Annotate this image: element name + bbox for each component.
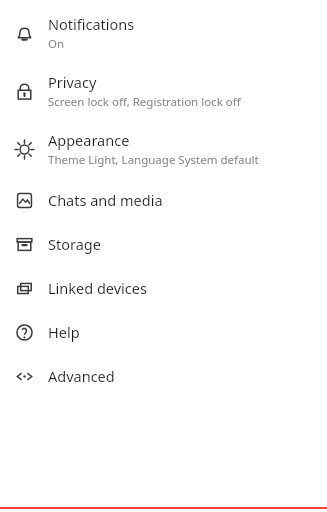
- staticText: Appearance: [48, 130, 130, 150]
- staticText: Theme Light, Language System default: [48, 152, 259, 168]
- button[interactable]: Chats and media: [0, 178, 327, 222]
- staticText: On: [48, 36, 65, 52]
- staticText: Advanced: [48, 366, 115, 386]
- staticText: Help: [48, 322, 80, 342]
- staticText: Chats and media: [48, 190, 163, 210]
- button[interactable]: Notifications: [0, 4, 327, 62]
- staticText: Linked devices: [48, 278, 147, 298]
- staticText: Storage: [48, 234, 101, 254]
- button[interactable]: Linked devices: [0, 266, 327, 310]
- button[interactable]: Privacy: [0, 62, 327, 120]
- button[interactable]: Storage: [0, 222, 327, 266]
- button[interactable]: Appearance: [0, 120, 327, 178]
- staticText: Screen lock off, Registration lock off: [48, 94, 241, 110]
- button[interactable]: Advanced: [0, 354, 327, 398]
- button[interactable]: Help: [0, 310, 327, 354]
- staticText: Privacy: [48, 72, 97, 92]
- staticText: Notifications: [48, 14, 135, 34]
